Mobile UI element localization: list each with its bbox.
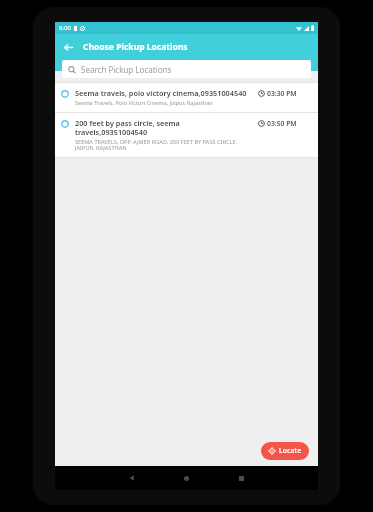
button[interactable]: Recents xyxy=(214,466,269,490)
button[interactable]: Back xyxy=(55,34,81,60)
staticText: Locate xyxy=(279,446,302,456)
staticText: Seema Travels, Polo Victori Cinema, Jaip… xyxy=(75,99,213,107)
button[interactable]: Search Pickup Locations xyxy=(62,60,311,78)
staticText: 200 feet by pass circle, seema travels,0… xyxy=(75,118,255,137)
staticText: Seema travels, polo victory cinema,09351… xyxy=(75,88,247,98)
staticText: 6:00 xyxy=(59,24,71,32)
staticText: 03:30 PM xyxy=(267,89,297,98)
staticText: 03:50 PM xyxy=(267,119,297,128)
button[interactable]: Locate xyxy=(261,442,309,460)
staticText: Choose Pickup Locations xyxy=(83,41,188,53)
staticText: Search Pickup Locations xyxy=(81,64,172,75)
button[interactable]: Home xyxy=(159,466,214,490)
staticText: SEEMA TRAVELS, OPP. AJMER ROAD, 200 FEET… xyxy=(75,138,255,152)
button[interactable]: Back xyxy=(104,466,159,490)
button[interactable]: 200 feet by pass circle, seema travels,0… xyxy=(55,113,318,157)
button[interactable]: Seema travels, polo victory cinema,09351… xyxy=(55,83,318,112)
